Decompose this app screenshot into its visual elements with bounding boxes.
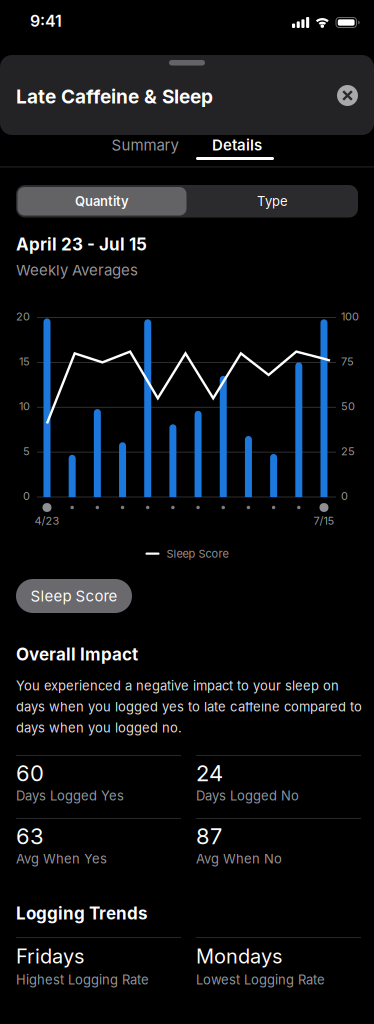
staticText: Logging Trends	[16, 903, 148, 924]
staticText: 25	[341, 444, 355, 458]
staticText: 75	[341, 355, 354, 368]
staticText: 63	[16, 823, 44, 850]
staticText: Late Caffeine & Sleep	[16, 85, 213, 108]
staticText: Type	[257, 193, 288, 209]
staticText: Lowest Logging Rate	[196, 972, 325, 988]
button[interactable]: Type	[189, 187, 356, 215]
staticText: Highest Logging Rate	[16, 972, 149, 988]
button[interactable]: Quantity	[17, 187, 186, 215]
button[interactable]: Summary	[95, 131, 195, 159]
staticText: Summary	[111, 136, 178, 154]
staticText: 87	[196, 823, 222, 850]
staticText: 10	[19, 400, 30, 413]
staticText: Days Logged Yes	[16, 788, 124, 804]
staticText: 9:41	[30, 11, 62, 31]
staticText: April 23 - Jul 15	[16, 234, 147, 255]
staticText: 15	[19, 355, 30, 368]
button[interactable]: Details	[187, 131, 287, 159]
staticText: You experienced a negative impact to you…	[16, 678, 362, 736]
staticText: Weekly Averages	[16, 261, 138, 279]
staticText: 0	[23, 489, 30, 503]
staticText: Avg When Yes	[16, 851, 107, 867]
staticText: 5	[23, 444, 30, 458]
staticText: Overall Impact	[16, 644, 138, 665]
staticText: Details	[212, 136, 262, 154]
staticText: 100	[341, 310, 359, 323]
staticText: Avg When No	[196, 851, 282, 867]
staticText: 4/23	[34, 514, 59, 527]
staticText: 20	[16, 310, 30, 323]
staticText: Days Logged No	[196, 788, 299, 804]
staticText: Fridays	[16, 944, 84, 968]
staticText: Sleep Score	[166, 547, 228, 560]
staticText: Quantity	[75, 193, 129, 209]
staticText: 50	[341, 400, 355, 413]
staticText: Mondays	[196, 944, 282, 968]
staticText: 0	[341, 489, 348, 503]
button[interactable]: Close	[337, 85, 358, 106]
button[interactable]: Sleep Score	[16, 579, 132, 613]
staticText: Sleep Score	[30, 587, 117, 605]
staticText: 24	[196, 760, 223, 787]
staticText: 60	[16, 760, 44, 787]
staticText: 7/15	[313, 514, 334, 527]
